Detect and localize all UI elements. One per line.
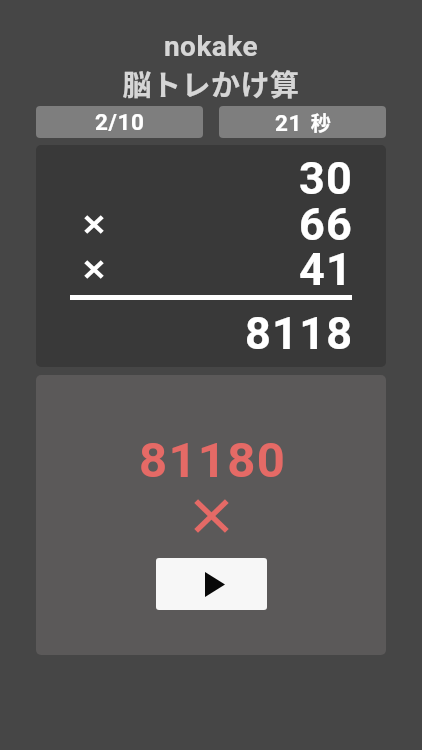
staticText: 81180 [139,432,287,489]
button[interactable]: Next question [156,558,267,610]
staticText: 21 秒 [275,108,331,137]
staticText: 8118 [245,307,354,360]
button[interactable]: 2/10 [36,106,203,138]
staticText: 41 [299,243,354,296]
staticText: 30 [299,152,354,205]
button[interactable]: 21 秒 [219,106,386,138]
staticText: 脳トレかけ算 [0,62,422,104]
staticText: nokake [0,30,422,63]
staticText: 2/10 [95,109,145,135]
staticText: 66 [299,198,354,251]
